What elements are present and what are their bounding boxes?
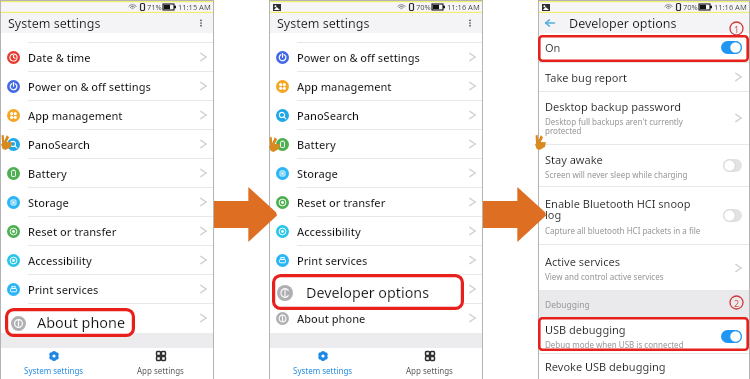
staticText: System settings [277, 15, 370, 32]
staticText: Take bug report [545, 70, 697, 85]
button[interactable]: Storage [269, 158, 483, 187]
staticText: 70% [416, 2, 431, 12]
staticText: 2 [734, 297, 740, 309]
staticText: Stay awake [545, 152, 697, 167]
staticText: Battery [28, 166, 67, 181]
staticText: Developer options [297, 282, 394, 297]
staticText: Accessibility [28, 253, 92, 268]
staticText: Date & time [28, 50, 91, 65]
button[interactable]: Battery [269, 129, 483, 158]
staticText: Power on & off settings [28, 79, 151, 94]
button[interactable]: Stay awake [538, 144, 750, 186]
button[interactable]: Accessibility [269, 216, 483, 245]
staticText: Developer options [569, 15, 677, 32]
staticText: Power on & off settings [297, 50, 420, 65]
button[interactable]: Power on & off settings [269, 42, 483, 71]
staticText: Debugging [545, 299, 590, 311]
staticText: About phone [28, 311, 97, 326]
staticText: Accessibility [297, 224, 361, 239]
staticText: System settings [293, 365, 353, 376]
button[interactable]: System settings [0, 348, 107, 379]
button[interactable]: Date & time [0, 42, 214, 71]
staticText: 11:16 AM [447, 2, 480, 12]
button[interactable]: App settings [107, 348, 214, 379]
staticText: App settings [406, 365, 453, 376]
staticText: PanoSearch [28, 137, 91, 152]
staticText: 71% [147, 2, 162, 12]
button[interactable]: Active services [538, 244, 750, 290]
staticText: Print services [297, 253, 368, 268]
button[interactable]: Take bug report [538, 62, 750, 91]
staticText: USB debugging [545, 322, 626, 337]
button[interactable]: PanoSearch [0, 129, 214, 158]
staticText: Battery [297, 137, 336, 152]
staticText: App management [297, 79, 392, 94]
staticText: System settings [24, 365, 84, 376]
staticText: About phone [297, 311, 366, 326]
button[interactable]: Revoke USB debugging [538, 353, 750, 379]
button[interactable]: About phone [0, 303, 214, 332]
staticText: On [545, 40, 561, 55]
button[interactable]: Print services [269, 245, 483, 274]
staticText: Screen will never sleep while charging [545, 169, 715, 180]
staticText: Storage [297, 166, 338, 181]
staticText: App management [28, 108, 123, 123]
staticText: Print services [28, 282, 99, 297]
staticText: Revoke USB debugging [545, 359, 697, 374]
staticText: 70% [683, 2, 698, 12]
button[interactable]: Battery [0, 158, 214, 187]
button[interactable]: About phone [269, 303, 483, 332]
staticText: 11:16 AM [714, 2, 747, 12]
button[interactable]: More options [464, 17, 476, 29]
button[interactable]: PanoSearch [269, 100, 483, 129]
button[interactable]: Storage [0, 187, 214, 216]
button[interactable]: App management [269, 71, 483, 100]
button[interactable]: Back [544, 17, 556, 29]
staticText: App settings [137, 365, 184, 376]
staticText: Reset or transfer [297, 195, 386, 210]
staticText: Active services [545, 254, 697, 269]
button[interactable]: Print services [0, 274, 214, 303]
button[interactable]: Desktop backup password [538, 91, 750, 144]
staticText: Enable Bluetooth HCI snoop log [545, 196, 697, 223]
staticText: Desktop backup password [545, 99, 697, 114]
button[interactable]: System settings [269, 348, 376, 379]
staticText: 11:15 AM [178, 2, 211, 12]
staticText: 1 [734, 23, 740, 35]
button[interactable]: More options [195, 17, 207, 29]
button[interactable]: Developer options [269, 274, 483, 303]
button[interactable]: Reset or transfer [269, 187, 483, 216]
staticText: About phone [37, 313, 126, 333]
button[interactable]: App management [0, 100, 214, 129]
staticText: Debug mode when USB is connected [545, 339, 684, 350]
staticText: Desktop full backups aren't currently pr… [545, 116, 690, 137]
button[interactable]: Reset or transfer [0, 216, 214, 245]
staticText: Storage [28, 195, 69, 210]
button[interactable]: App settings [376, 348, 483, 379]
staticText: View and control active services [545, 271, 715, 282]
button[interactable]: Accessibility [0, 245, 214, 274]
staticText: PanoSearch [297, 108, 360, 123]
staticText: Reset or transfer [28, 224, 117, 239]
staticText: System settings [8, 15, 101, 32]
button[interactable]: Enable Bluetooth HCI snoop log [538, 186, 750, 244]
button[interactable]: Power on & off settings [0, 71, 214, 100]
staticText: Developer options [306, 283, 429, 302]
staticText: Capture all bluetooth HCI packets in a f… [545, 225, 715, 236]
